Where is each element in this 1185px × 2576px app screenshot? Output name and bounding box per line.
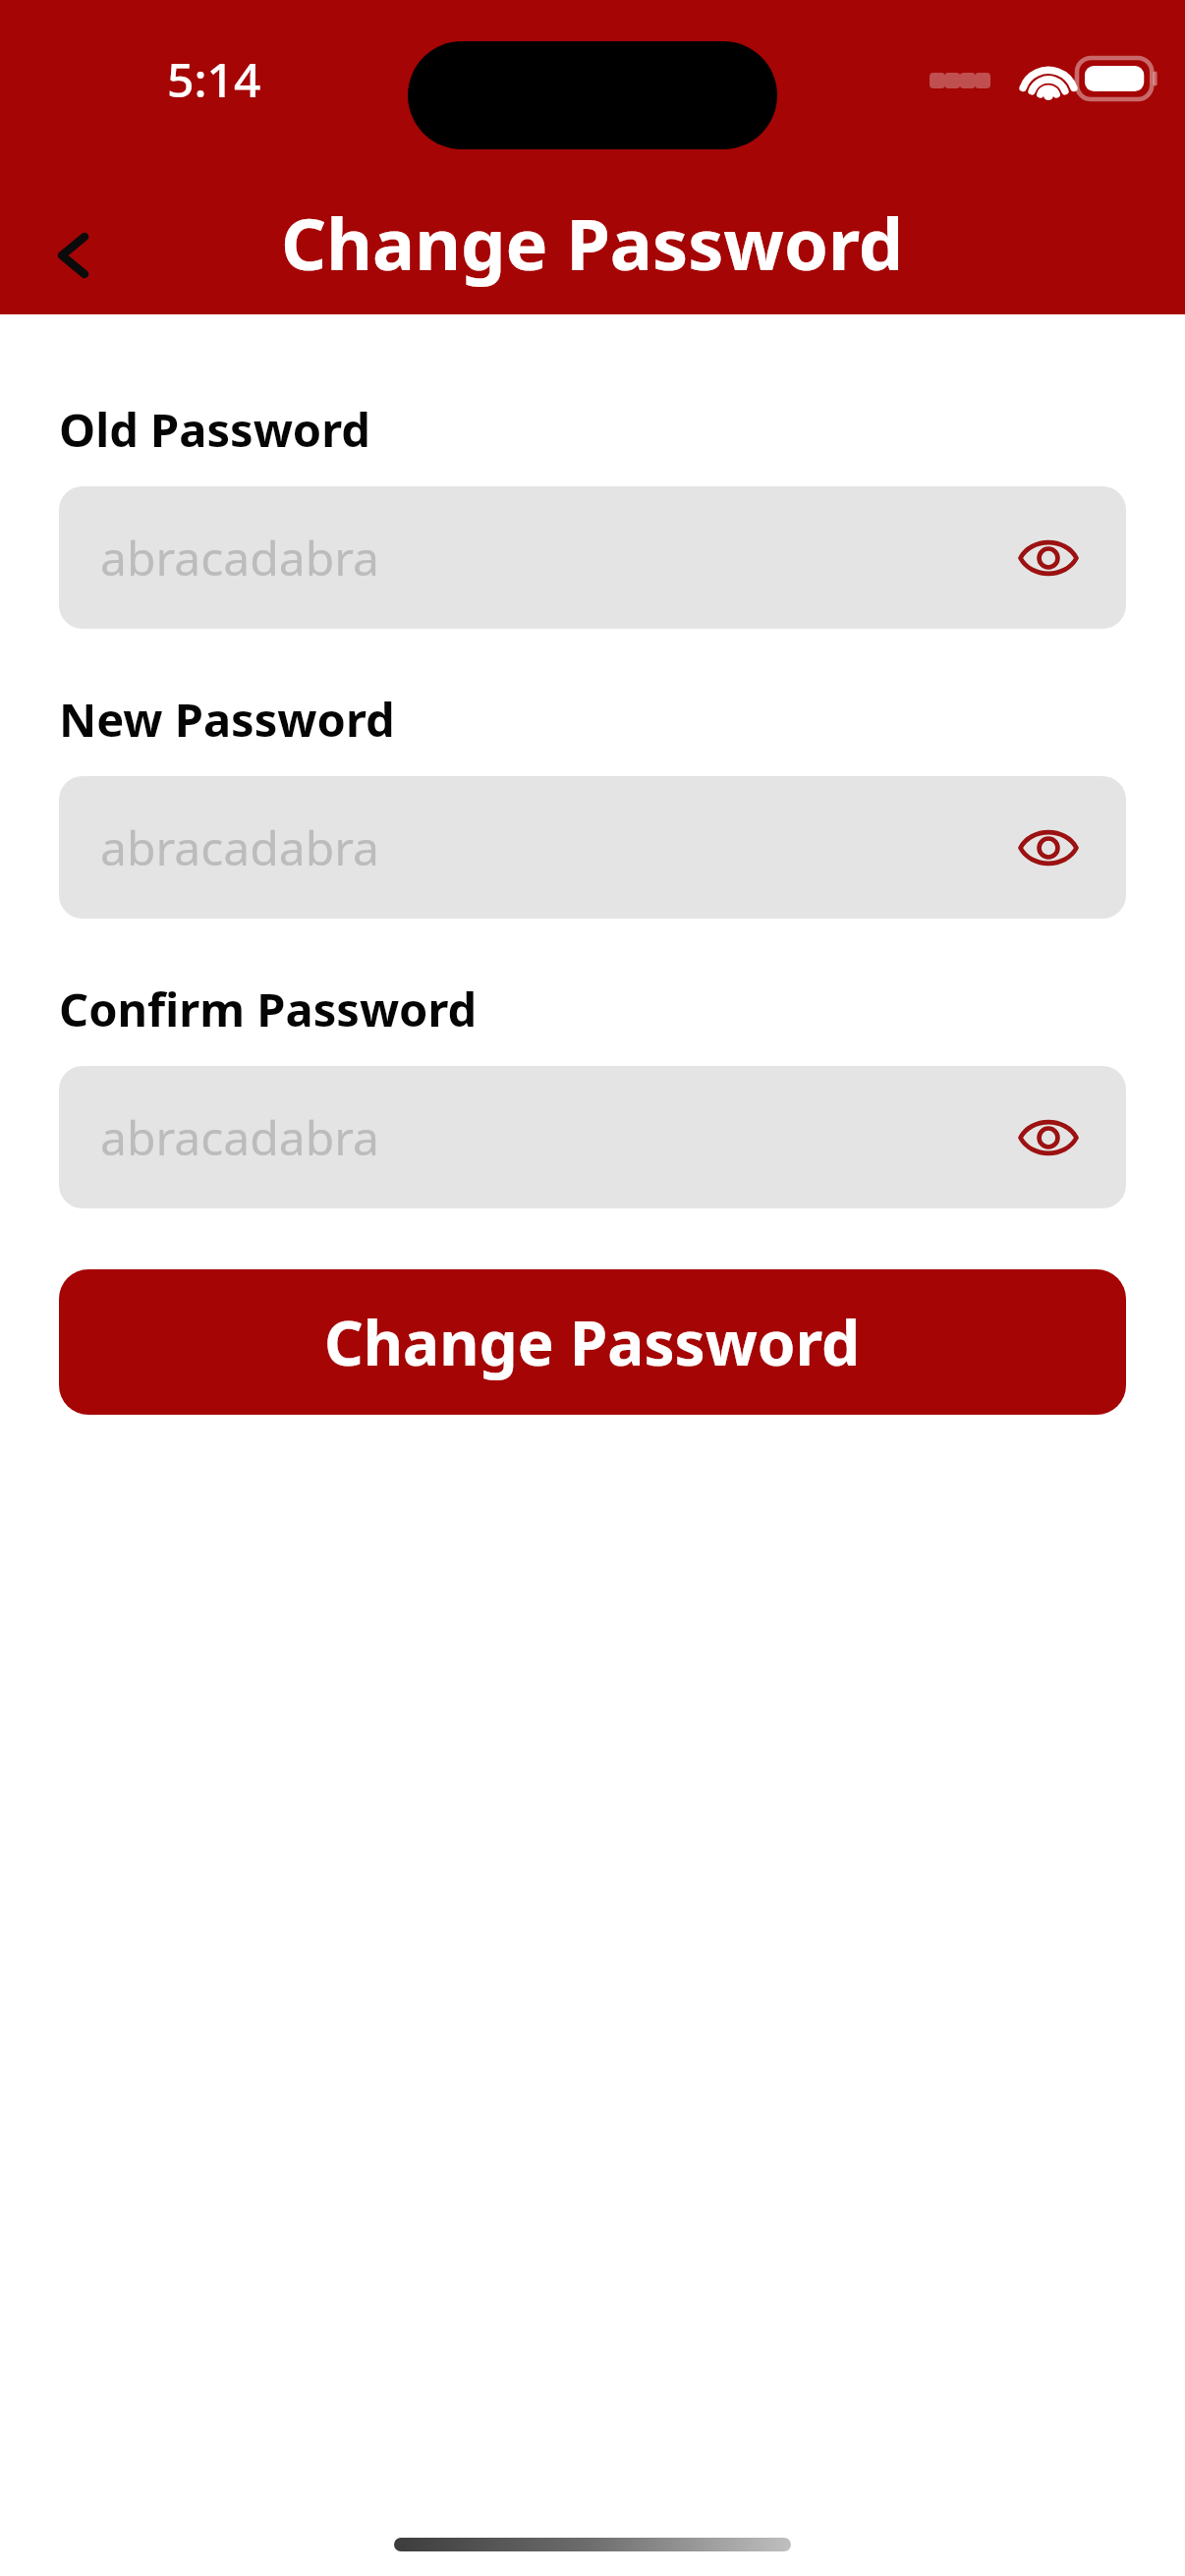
staticText: Change Password [324,1301,861,1383]
staticText: abracadabra [100,526,1014,589]
button[interactable]: Show password [1014,813,1083,882]
button[interactable]: Show password [1014,524,1083,592]
staticText: abracadabra [100,815,1014,879]
button[interactable]: abracadabra [59,1066,1126,1208]
staticText: Old Password [59,398,371,461]
staticText: Change Password [281,195,904,291]
staticText: Confirm Password [59,978,478,1040]
button[interactable]: Show password [1014,1103,1083,1172]
button[interactable]: Back [29,211,118,300]
button[interactable]: abracadabra [59,486,1126,629]
staticText: New Password [59,688,395,751]
staticText: abracadabra [100,1105,1014,1169]
staticText: 5:14 [167,47,261,111]
button[interactable]: abracadabra [59,776,1126,919]
button[interactable]: Change Password [59,1269,1126,1415]
